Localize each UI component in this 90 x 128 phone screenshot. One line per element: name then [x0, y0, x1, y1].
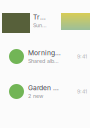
- staticText: 9:41: [77, 88, 87, 95]
- staticText: Morning walk: [28, 49, 61, 57]
- staticText: Sunset: [33, 22, 47, 29]
- staticText: Trailhead: [33, 13, 47, 21]
- staticText: Shared album: [28, 58, 61, 64]
- staticText: 2 new: [28, 93, 43, 99]
- staticText: 9:41: [77, 53, 87, 60]
- staticText: Garden notes: [28, 84, 61, 92]
